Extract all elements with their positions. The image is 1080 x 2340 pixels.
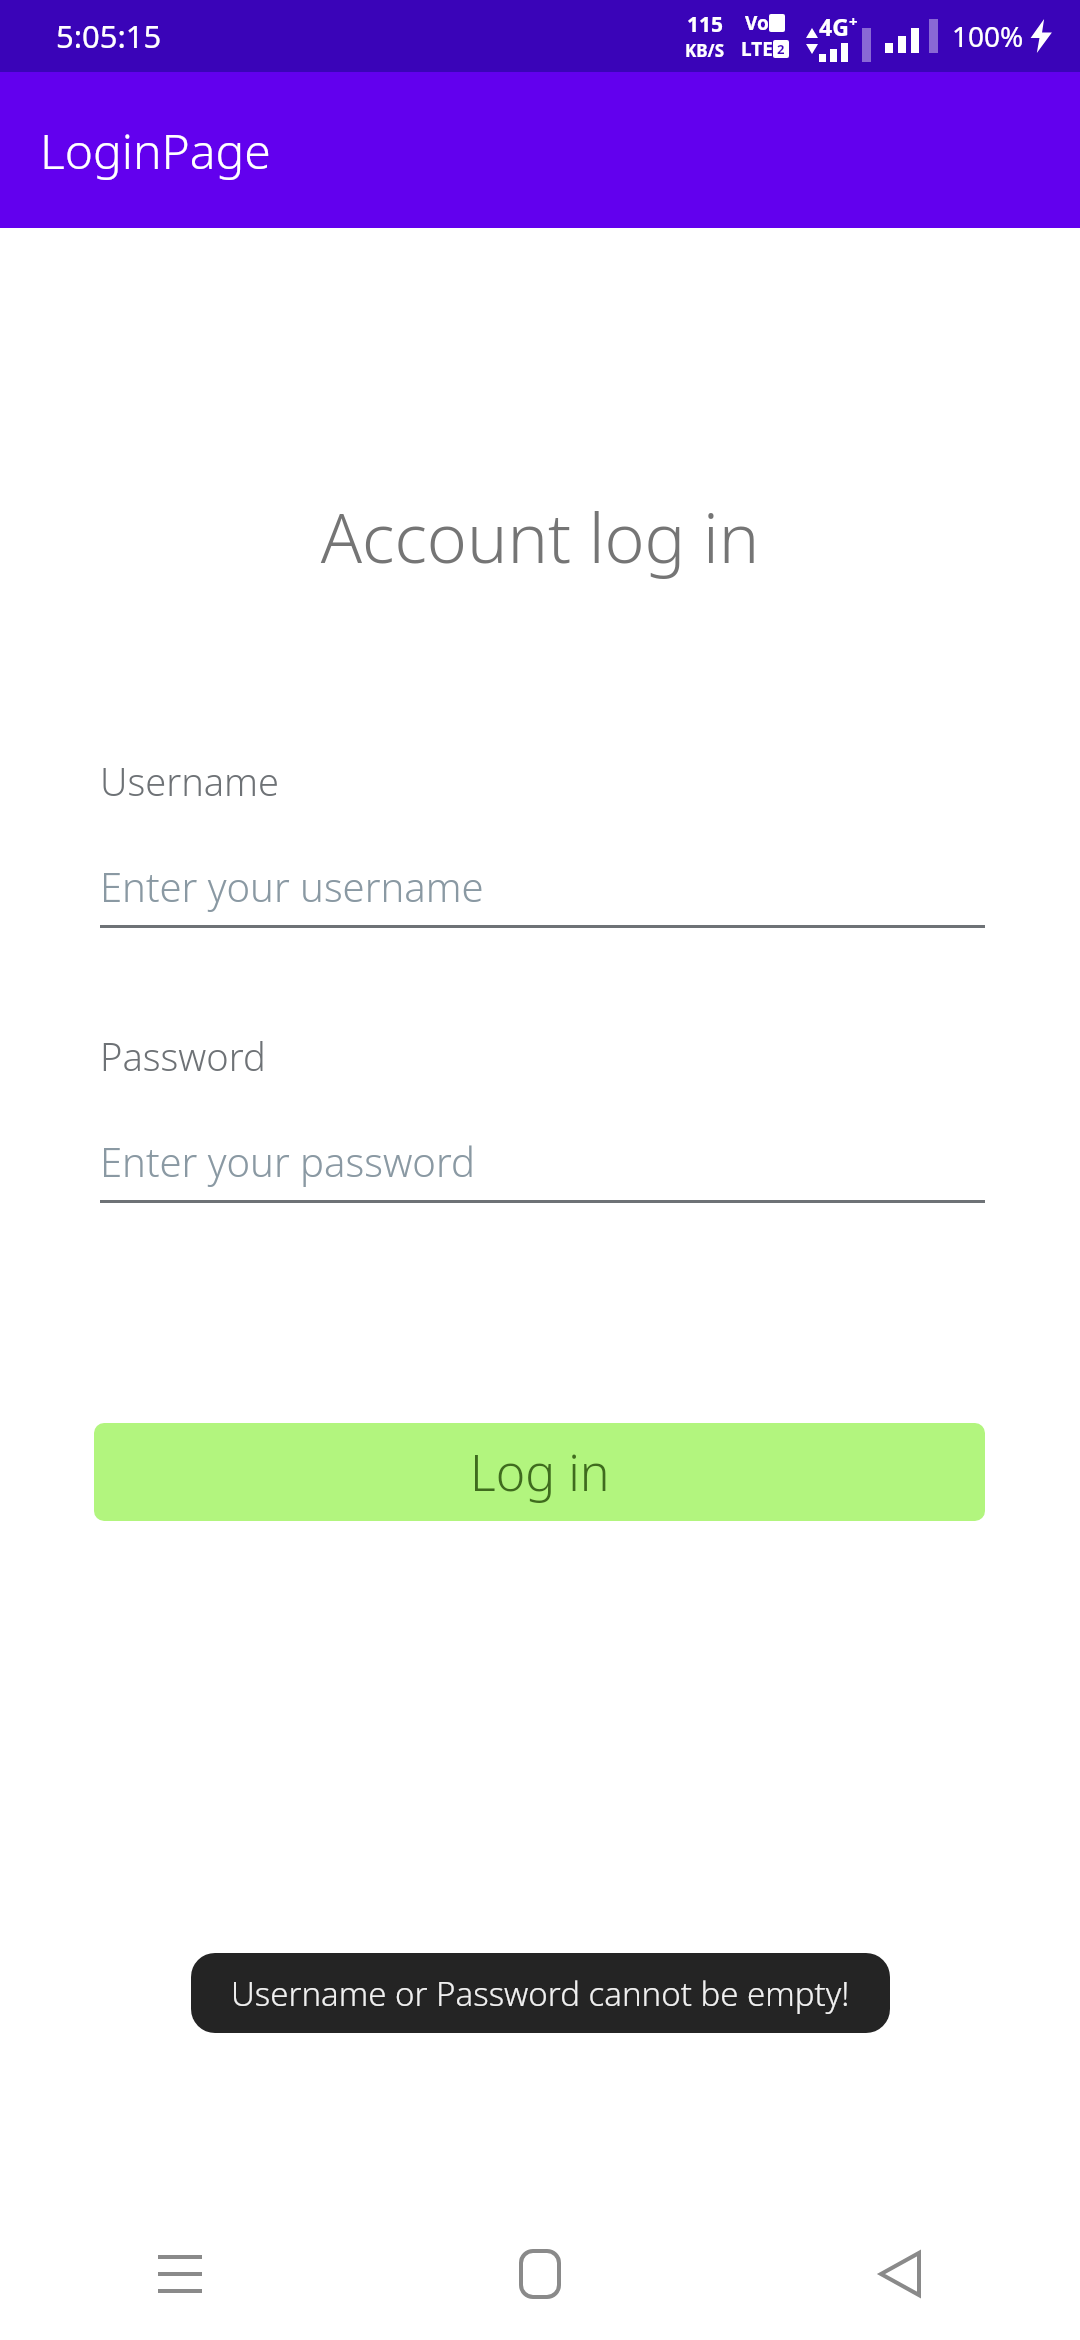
staticText: 5:05:15 (56, 15, 162, 57)
staticText: + (849, 11, 858, 31)
staticText: 4G (819, 11, 849, 42)
button[interactable]: Log in (94, 1423, 985, 1521)
staticText: Password (100, 1030, 266, 1082)
staticText: Vo (745, 10, 769, 36)
staticText: 100% (952, 17, 1024, 55)
staticText: Username or Password cannot be empty! (231, 1971, 850, 2016)
staticText: Account log in (0, 490, 1080, 583)
button[interactable]: Username field (100, 859, 985, 928)
staticText: Enter your username (100, 859, 484, 913)
button[interactable]: Home (360, 2208, 720, 2340)
staticText: Log in (470, 1438, 610, 1506)
staticText: 115 (687, 10, 724, 39)
staticText: LTE (741, 36, 773, 62)
staticText: Username (100, 755, 280, 807)
button[interactable]: Back (720, 2208, 1080, 2340)
button[interactable]: Password field (100, 1134, 985, 1203)
button[interactable]: Recents (0, 2208, 360, 2340)
staticText: 2 (777, 40, 785, 58)
staticText: KB/S (685, 39, 725, 62)
staticText: LoginPage (40, 118, 271, 183)
staticText: Enter your password (100, 1134, 475, 1188)
